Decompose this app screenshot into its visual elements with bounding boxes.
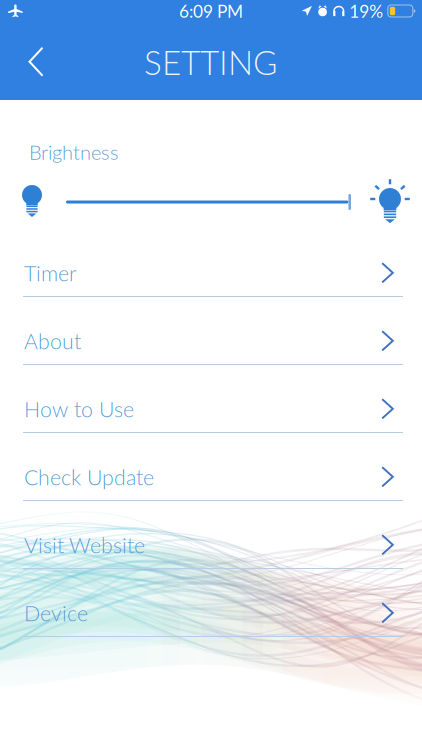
staticText: 6:09 PM bbox=[179, 1, 243, 21]
staticText: Visit Website bbox=[24, 532, 145, 558]
staticText: SETTING bbox=[144, 42, 278, 82]
staticText: Device bbox=[24, 600, 88, 626]
staticText: How to Use bbox=[24, 396, 134, 422]
staticText: About bbox=[24, 328, 81, 354]
staticText: Timer bbox=[24, 260, 77, 286]
button[interactable]: Check Update bbox=[0, 454, 422, 522]
staticText: Check Update bbox=[24, 464, 154, 490]
button[interactable]: Visit Website bbox=[0, 522, 422, 590]
button[interactable]: How to Use bbox=[0, 386, 422, 454]
button[interactable]: Back bbox=[0, 31, 60, 93]
staticText: Brightness bbox=[29, 140, 119, 164]
button[interactable]: Timer bbox=[0, 250, 422, 318]
button[interactable]: Device bbox=[0, 590, 422, 658]
button[interactable]: About bbox=[0, 318, 422, 386]
staticText: 19% bbox=[349, 1, 383, 21]
